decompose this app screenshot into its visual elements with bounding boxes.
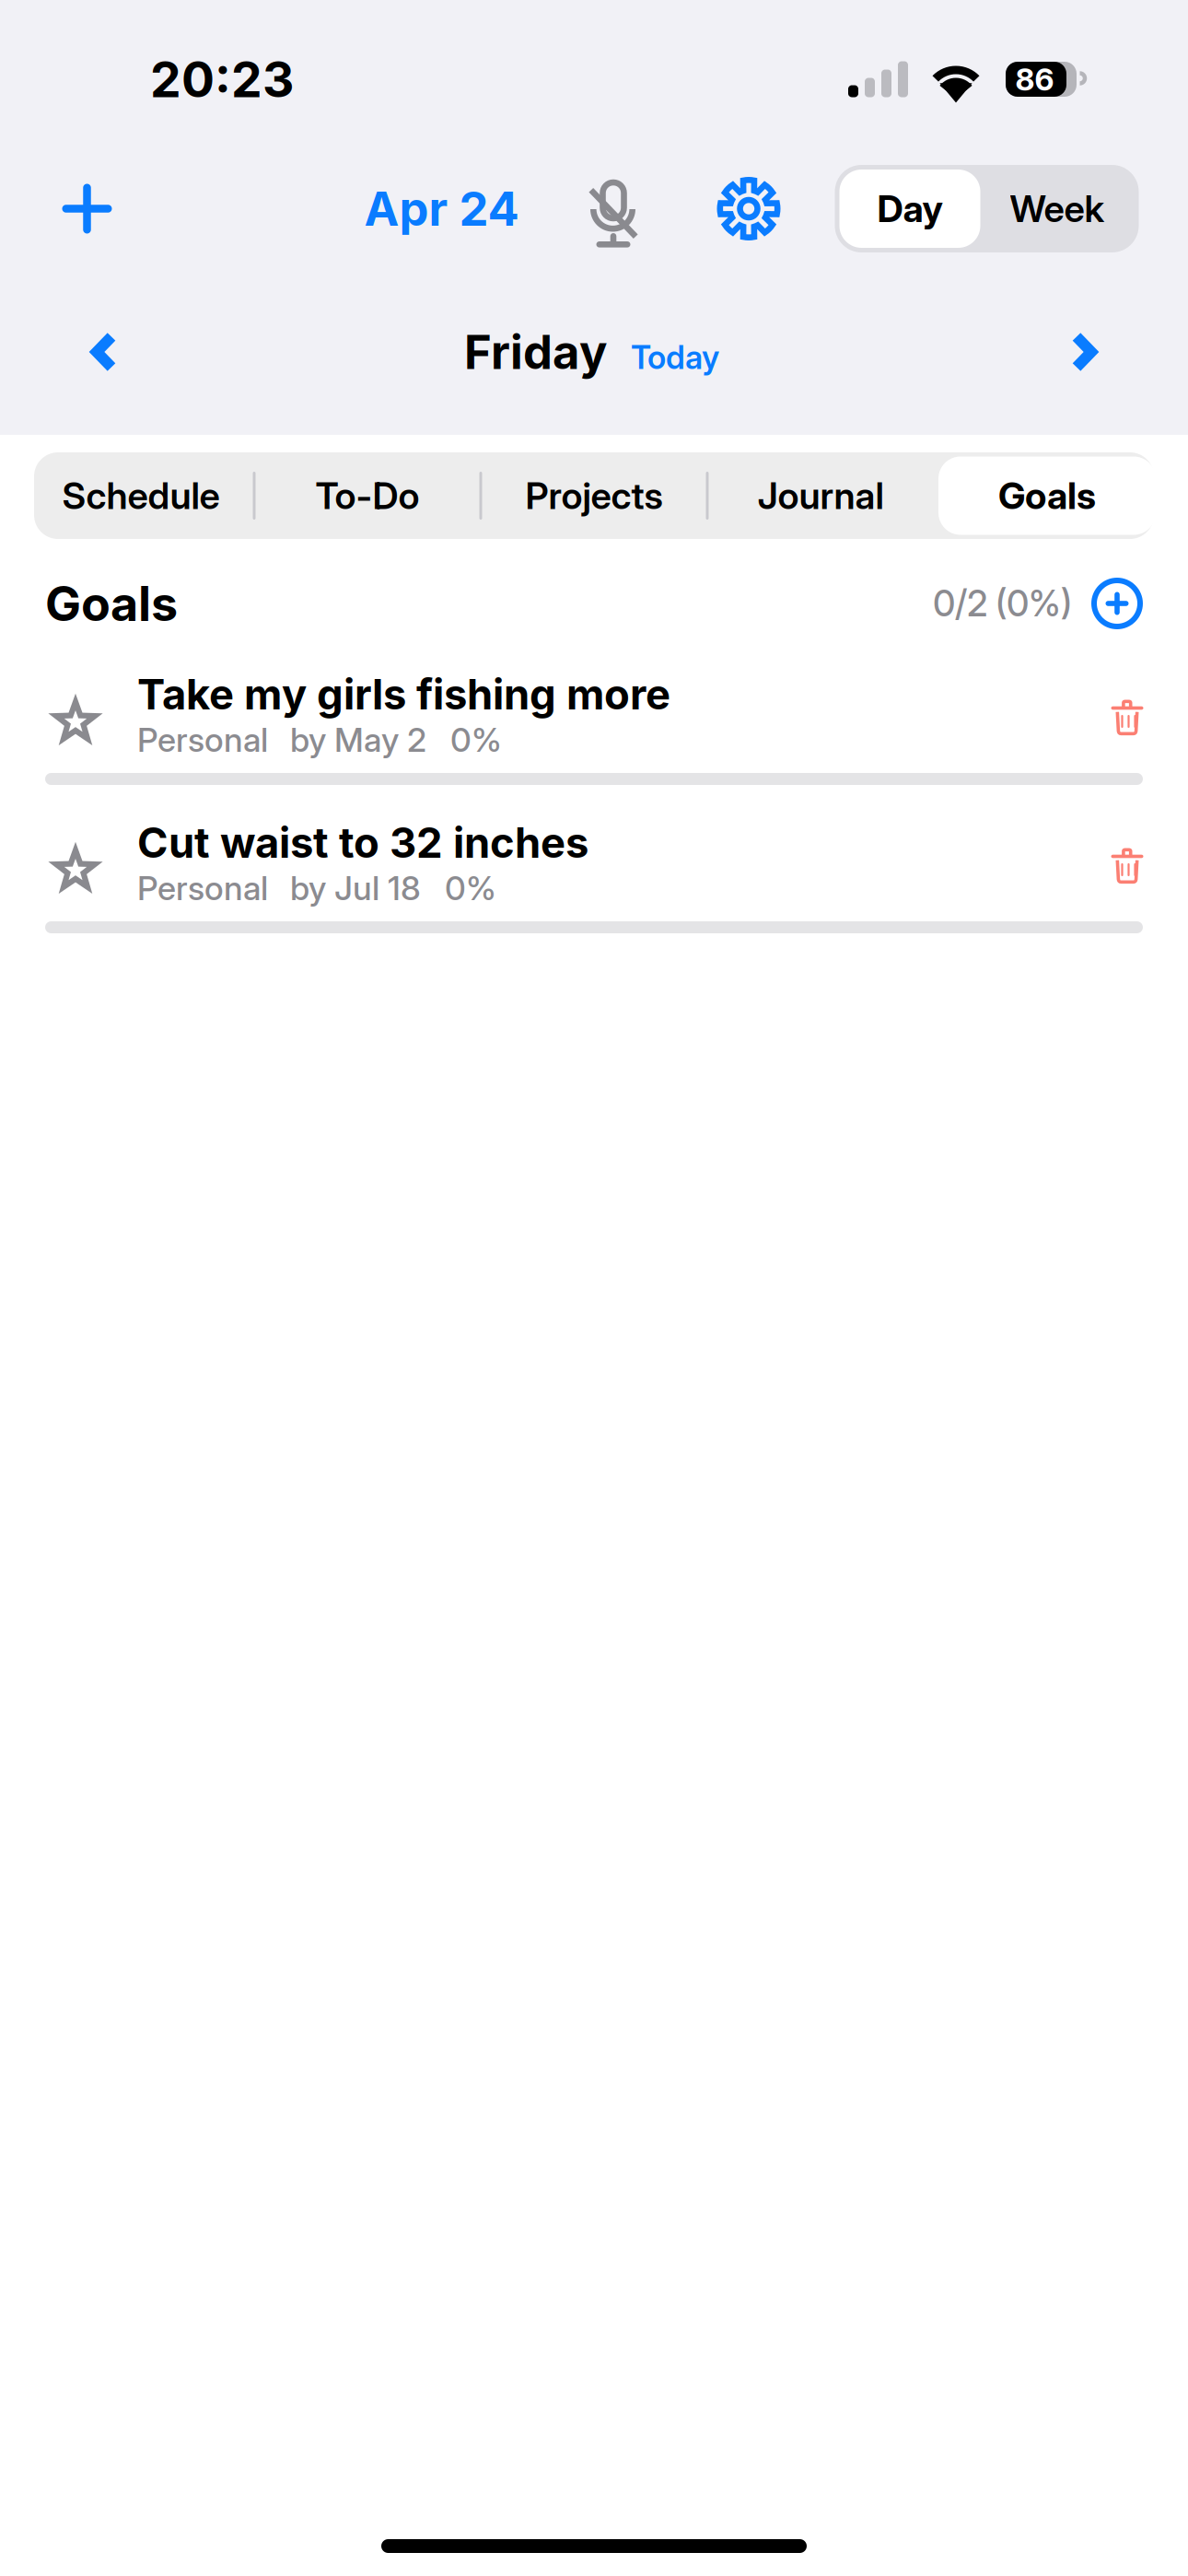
button[interactable]: Star goal — [49, 796, 137, 912]
button[interactable]: Next day — [1032, 310, 1136, 394]
staticText: Goals — [998, 473, 1096, 518]
staticText: 86 — [1015, 61, 1054, 98]
button[interactable]: Day — [839, 170, 980, 248]
button[interactable]: To-Do — [256, 452, 479, 539]
button[interactable]: Previous day — [52, 310, 156, 394]
button[interactable]: Projects — [482, 452, 706, 539]
staticText: Journal — [757, 473, 884, 518]
button[interactable]: Settings — [691, 165, 806, 252]
button[interactable]: Delete goal — [1089, 796, 1166, 912]
button[interactable]: Add goal — [1094, 580, 1140, 626]
staticText: by May 2 — [290, 720, 426, 760]
button[interactable]: Microphone off — [562, 165, 664, 252]
staticText: 20:23 — [150, 49, 294, 109]
button[interactable]: Goals — [935, 452, 1159, 539]
staticText: Personal — [137, 868, 268, 908]
staticText: To-Do — [315, 473, 419, 518]
button[interactable]: Schedule — [29, 452, 253, 539]
staticText: Today — [631, 338, 719, 377]
staticText: Apr 24 — [364, 180, 519, 237]
staticText: Personal — [137, 720, 268, 760]
staticText: Week — [1010, 186, 1105, 231]
staticText: Cut waist to 32 inches — [137, 817, 588, 868]
button[interactable]: Week — [980, 170, 1134, 248]
staticText: by Jul 18 — [290, 868, 421, 908]
button[interactable]: Journal — [709, 452, 932, 539]
staticText: Goals — [45, 574, 178, 632]
button[interactable]: Add — [37, 165, 137, 252]
button[interactable]: Apr 24 — [362, 165, 521, 252]
staticText: Schedule — [62, 473, 220, 518]
staticText: Projects — [525, 473, 663, 518]
staticText: 0% — [445, 868, 496, 908]
staticText: 0/2 (0%) — [933, 582, 1072, 625]
staticText: 0% — [450, 720, 502, 760]
staticText: Day — [877, 186, 943, 231]
button[interactable]: Star goal — [49, 648, 137, 764]
button[interactable]: Delete goal — [1089, 648, 1166, 764]
staticText: Take my girls fishing more — [137, 669, 670, 720]
staticText: Friday — [464, 324, 608, 380]
